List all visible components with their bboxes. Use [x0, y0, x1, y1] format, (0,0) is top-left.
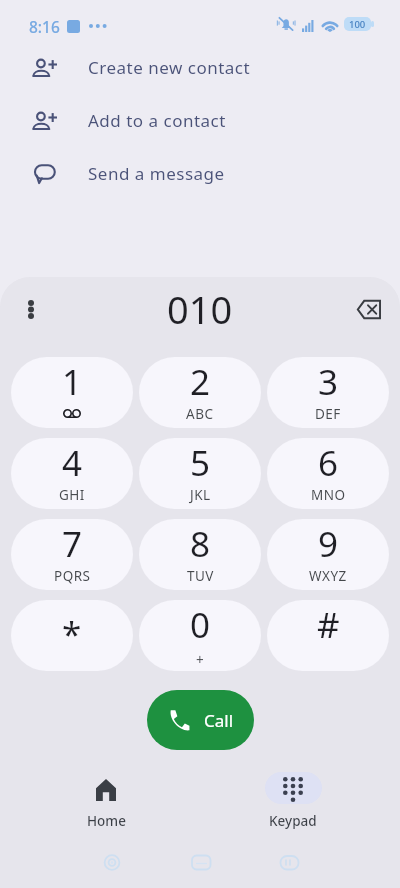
staticText: 100	[349, 18, 366, 31]
staticText: PQRS	[54, 567, 91, 585]
staticText: 010	[167, 283, 233, 335]
button[interactable]: Create new contact	[0, 41, 400, 94]
button[interactable]: 4	[11, 438, 133, 509]
staticText: 6	[318, 439, 339, 487]
button[interactable]: 0	[139, 600, 261, 671]
staticText: #	[317, 601, 340, 649]
staticText: WXYZ	[309, 567, 347, 585]
button[interactable]: Backspace	[346, 286, 392, 332]
staticText: 1	[62, 358, 83, 406]
button[interactable]: Call	[147, 690, 254, 750]
button[interactable]: Send a message	[0, 147, 400, 200]
staticText: 4	[62, 439, 83, 487]
staticText: GHI	[59, 486, 85, 504]
button[interactable]: #	[267, 600, 389, 671]
staticText: Create new contact	[88, 56, 251, 79]
button[interactable]: *	[11, 600, 133, 671]
staticText: 0	[190, 601, 211, 649]
staticText: 3	[318, 358, 339, 406]
staticText: *	[62, 610, 82, 658]
button[interactable]: More options	[11, 289, 51, 329]
staticText: +	[196, 651, 205, 669]
button[interactable]: 2	[139, 357, 261, 428]
staticText: 8:16	[29, 16, 60, 37]
button[interactable]: 3	[267, 357, 389, 428]
staticText: ABC	[186, 405, 214, 423]
staticText: 8	[190, 520, 211, 568]
staticText: JKL	[190, 486, 211, 504]
staticText: Call	[204, 709, 234, 732]
button[interactable]: 8	[139, 519, 261, 590]
staticText: 9	[318, 520, 339, 568]
staticText: Keypad	[269, 812, 317, 830]
button[interactable]: Keypad	[253, 768, 333, 832]
button[interactable]: Add to a contact	[0, 94, 400, 147]
staticText: MNO	[311, 486, 346, 504]
button[interactable]: Home	[66, 768, 146, 832]
staticText: 7	[62, 520, 83, 568]
staticText: Add to a contact	[88, 109, 226, 132]
staticText: TUV	[187, 567, 214, 585]
staticText: 2	[190, 358, 211, 406]
button[interactable]: 6	[267, 438, 389, 509]
staticText: 5	[190, 439, 211, 487]
staticText: Home	[87, 812, 126, 830]
staticText: DEF	[315, 405, 341, 423]
button[interactable]: 1	[11, 357, 133, 428]
staticText: Send a message	[88, 162, 225, 185]
button[interactable]: 9	[267, 519, 389, 590]
button[interactable]: 7	[11, 519, 133, 590]
button[interactable]: 5	[139, 438, 261, 509]
